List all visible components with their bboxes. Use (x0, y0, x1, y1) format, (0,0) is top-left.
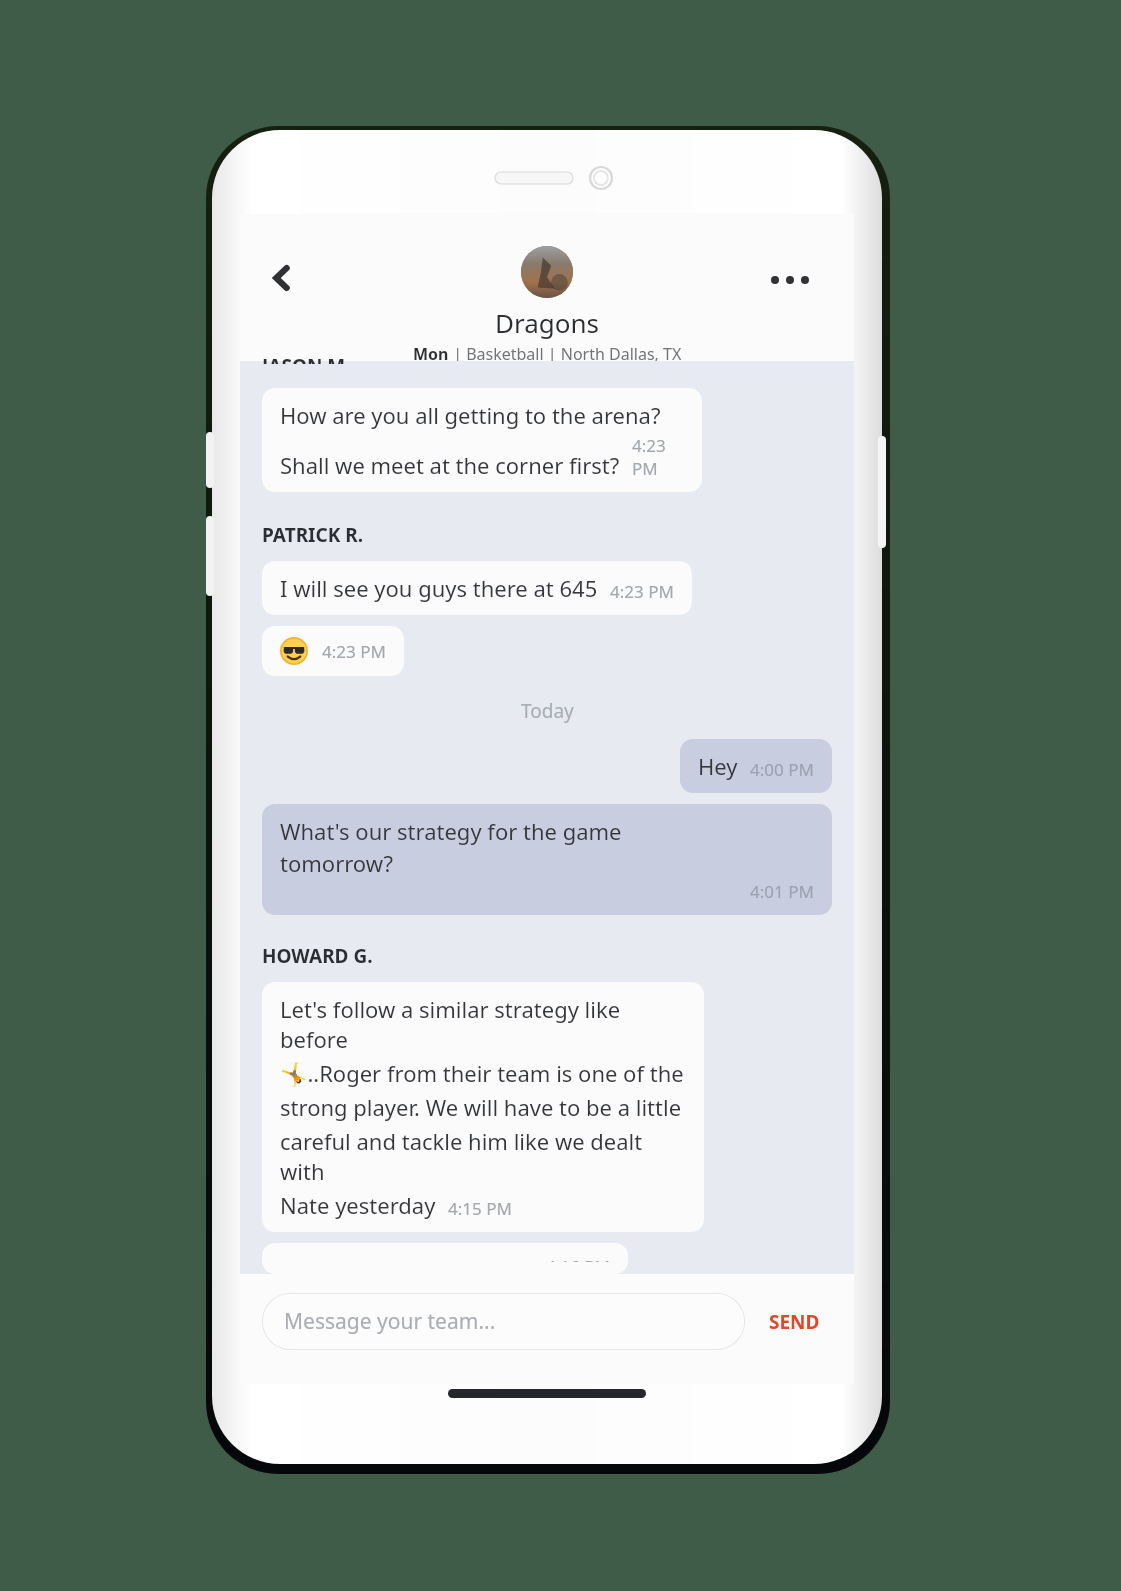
staticText: PATRICK R. (262, 522, 364, 548)
staticText: 🤸..Roger from their team is one of the (280, 1058, 684, 1088)
staticText: How are you all getting to the arena? (280, 400, 661, 430)
staticText: Hey (698, 751, 738, 781)
staticText: Message your team... (284, 1307, 496, 1336)
button[interactable]: Hey (680, 739, 832, 793)
staticText: strong player. We will have to be a litt… (280, 1092, 682, 1122)
staticText: Today (521, 698, 574, 724)
button[interactable]: I will see you guys there at 645 (262, 561, 692, 615)
button[interactable]: SEND (757, 1299, 832, 1345)
button[interactable]: How are you all getting to the arena? (262, 388, 702, 492)
staticText: tomorrow? (280, 848, 394, 878)
staticText: 4:00 PM (750, 758, 814, 781)
button[interactable]: 4:23 PM (262, 626, 404, 676)
staticText: JASON M. (262, 353, 351, 364)
staticText: Shall we meet at the corner first? (280, 450, 620, 480)
button[interactable]: Let's follow a similar strategy like bef… (262, 982, 704, 1232)
staticText: 4:01 PM (750, 880, 814, 903)
staticText: 4:23 PM (632, 434, 684, 480)
button[interactable]: Dragons team avatar (521, 246, 573, 298)
staticText: 4:15 PM (448, 1197, 512, 1220)
staticText: Nate yesterday (280, 1190, 436, 1220)
staticText: What's our strategy for the game (280, 816, 622, 846)
staticText: | Basketball | North Dallas, TX (449, 343, 682, 361)
staticText: 4:23 PM (610, 580, 674, 603)
button[interactable]: More options (762, 252, 818, 308)
staticText: 4:16 PM (546, 1255, 610, 1262)
staticText: careful and tackle him like we dealt wit… (280, 1126, 686, 1186)
button[interactable]: What's our strategy for the game (262, 804, 832, 915)
staticText: HOWARD G. (262, 943, 373, 969)
staticText: Mon (413, 343, 449, 361)
staticText: Let's follow a similar strategy like bef… (280, 994, 686, 1054)
staticText: Dragons (495, 305, 600, 340)
button[interactable]: Message your team... (262, 1293, 745, 1350)
button[interactable]: Back (254, 250, 310, 306)
button[interactable]: What do you guys think? (262, 1243, 628, 1274)
staticText: I will see you guys there at 645 (280, 573, 598, 603)
staticText: 4:23 PM (322, 640, 386, 663)
staticText: SEND (769, 1309, 820, 1335)
